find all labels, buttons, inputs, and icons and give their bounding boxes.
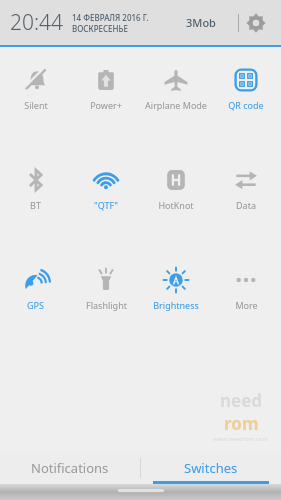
- staticText: Power+: [90, 99, 122, 111]
- staticText: HotKnot: [158, 199, 194, 211]
- staticText: Flashlight: [86, 299, 127, 311]
- staticText: BT: [30, 199, 41, 211]
- staticText: 20:44: [10, 8, 64, 37]
- button[interactable]: More: [211, 263, 281, 315]
- staticText: rom: [224, 412, 259, 435]
- staticText: Notifications: [31, 459, 109, 477]
- staticText: 14 ФЕВРАЛЯ 2016 Г.: [72, 12, 149, 23]
- staticText: 3Mob: [186, 15, 216, 30]
- staticText: "QTF": [94, 199, 118, 211]
- button[interactable]: Data: [211, 163, 281, 215]
- button[interactable]: Silent: [0, 63, 71, 115]
- staticText: QR code: [228, 99, 264, 111]
- button[interactable]: HotKnot: [141, 163, 211, 215]
- staticText: need: [220, 389, 263, 412]
- button[interactable]: Power+: [71, 63, 141, 115]
- staticText: Silent: [24, 99, 48, 111]
- button[interactable]: "QTF": [71, 163, 141, 215]
- button[interactable]: Switches: [140, 451, 281, 484]
- button[interactable]: QR code: [211, 63, 281, 115]
- button[interactable]: Settings: [239, 6, 273, 40]
- button[interactable]: GPS: [0, 263, 71, 315]
- staticText: GPS: [27, 299, 44, 311]
- staticText: Data: [236, 199, 256, 211]
- button[interactable]: Airplane Mode: [141, 63, 211, 115]
- staticText: www.needrom.com: [213, 435, 269, 443]
- button[interactable]: BT: [0, 163, 71, 215]
- staticText: Brightness: [153, 299, 199, 311]
- button[interactable]: Flashlight: [71, 263, 141, 315]
- button[interactable]: Brightness: [141, 263, 211, 315]
- staticText: Switches: [184, 459, 238, 477]
- button[interactable]: Notifications: [0, 451, 140, 484]
- staticText: ВОСКРЕСЕНЬЕ: [72, 23, 128, 34]
- staticText: Airplane Mode: [145, 99, 207, 111]
- staticText: More: [235, 299, 258, 311]
